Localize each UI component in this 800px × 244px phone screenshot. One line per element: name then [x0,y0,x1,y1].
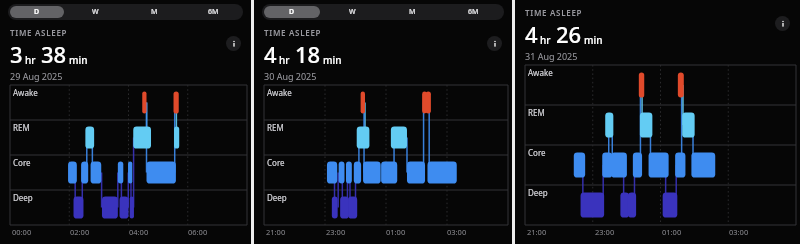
staticText: 02:00 [70,227,90,237]
staticText: M [151,7,158,17]
staticText: 03:00 [729,227,749,237]
staticText: REM [13,122,30,133]
staticText: Deep [267,192,287,203]
button[interactable]: Information about time asleep [226,36,241,51]
staticText: 6M [208,7,219,17]
staticText: Core [528,147,546,158]
staticText: 18 [295,39,321,69]
staticText: 21:00 [527,227,547,237]
staticText: Awake [267,87,292,98]
staticText: Core [13,157,31,168]
staticText: 06:00 [188,227,208,237]
staticText: 23:00 [595,227,615,237]
staticText: 01:00 [386,227,406,237]
staticText: Awake [13,87,38,98]
staticText: 3 [10,39,23,69]
button[interactable]: 6M [445,6,502,18]
staticText: 31 Aug 2025 [525,50,578,62]
button[interactable]: M [384,6,441,18]
staticText: 26 [556,19,582,49]
staticText: REM [528,107,545,118]
staticText: 30 Aug 2025 [264,70,317,82]
staticText: D [289,7,295,17]
staticText: TIME ASLEEP [10,27,68,38]
button[interactable]: W [68,6,123,18]
staticText: hr [279,53,290,67]
staticText: 6M [468,7,479,17]
staticText: Awake [528,67,553,78]
button[interactable]: M [127,6,182,18]
staticText: TIME ASLEEP [264,27,322,38]
staticText: min [323,53,342,67]
staticText: 00:00 [12,227,32,237]
staticText: 03:00 [447,227,467,237]
button[interactable]: D [264,6,320,18]
staticText: 23:00 [326,227,346,237]
staticText: TIME ASLEEP [525,7,583,18]
staticText: 04:00 [129,227,149,237]
staticText: REM [267,122,284,133]
staticText: W [349,7,356,17]
staticText: 29 Aug 2025 [10,70,63,82]
staticText: min [69,53,88,67]
staticText: Core [267,157,285,168]
button[interactable]: Information about time asleep [775,16,790,31]
button[interactable]: 6M [186,6,241,18]
staticText: Deep [13,192,33,203]
staticText: 4 [525,19,538,49]
staticText: min [584,33,603,47]
button[interactable]: Information about time asleep [487,36,502,51]
staticText: Deep [528,187,548,198]
staticText: 38 [41,39,67,69]
staticText: D [34,7,40,17]
staticText: 4 [264,39,277,69]
staticText: hr [25,53,36,67]
button[interactable]: D [10,6,64,18]
staticText: M [409,7,416,17]
button[interactable]: W [324,6,380,18]
staticText: W [92,7,99,17]
staticText: hr [540,33,551,47]
staticText: 01:00 [662,227,682,237]
staticText: 21:00 [266,227,286,237]
